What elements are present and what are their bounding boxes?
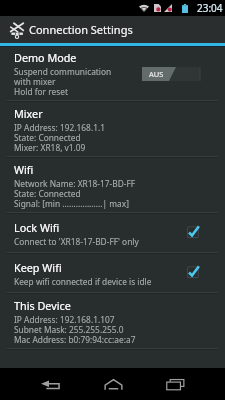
staticText: Keep Wifi	[14, 260, 62, 275]
other: X AIR app icon	[10, 21, 24, 38]
button[interactable]: Demo Mode	[0, 47, 225, 100]
button[interactable]: Enabled checkbox	[186, 225, 201, 240]
button[interactable]: X AIR app icon	[0, 16, 225, 43]
staticText: AUS	[149, 69, 164, 79]
button[interactable]: Wifi	[0, 158, 225, 212]
staticText: Suspend communication with mixer Hold fo…	[14, 66, 112, 97]
button[interactable]: Recent apps	[155, 370, 195, 398]
staticText: 23:04	[197, 1, 223, 15]
staticText: This Device	[14, 298, 71, 313]
button[interactable]: Enabled checkbox	[186, 265, 201, 280]
button[interactable]: This Device	[0, 294, 225, 348]
staticText: Keep wifi connected if device is idle	[14, 276, 152, 287]
button[interactable]: Demo mode off	[142, 67, 200, 81]
button[interactable]: Lock Wifi	[0, 214, 225, 252]
button[interactable]: Back	[30, 370, 70, 398]
staticText: IP Address: 192.168.1.1 State: Connected…	[14, 122, 105, 153]
staticText: Connect to 'XR18-17-BD-FF' only	[14, 236, 139, 247]
staticText: Mixer	[14, 106, 43, 121]
staticText: Lock Wifi	[14, 220, 60, 235]
button[interactable]: Mixer	[0, 102, 225, 156]
button[interactable]: Home	[93, 370, 133, 398]
staticText: Wifi	[14, 162, 34, 177]
staticText: Connection Settings	[29, 22, 133, 37]
staticText: Demo Mode	[14, 50, 77, 65]
staticText: Network Name: XR18-17-BD-FF State: Conne…	[14, 178, 136, 209]
staticText: IP Address: 192.168.1.107 Subnet Mask: 2…	[14, 314, 136, 345]
button[interactable]: Keep Wifi	[0, 254, 225, 292]
